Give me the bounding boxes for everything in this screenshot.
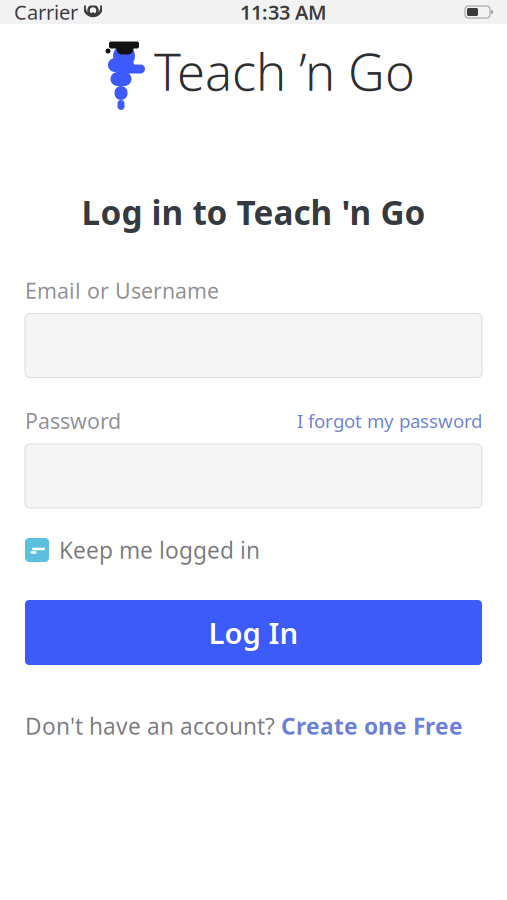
staticText: Teach ’n Go [154,37,415,105]
button[interactable]: I forgot my password [297,408,482,433]
staticText: Log in to Teach 'n Go [81,190,425,234]
staticText: Don't have an account? [25,711,281,741]
staticText: Carrier [14,0,78,25]
staticText: Create one Free [281,711,463,741]
button[interactable]: Keep me logged in [25,535,260,565]
staticText: I forgot my password [297,408,482,433]
button[interactable]: Create one Free [281,711,463,741]
staticText: Keep me logged in [59,535,260,565]
staticText: Email or Username [25,276,219,305]
staticText: Log In [208,613,298,652]
staticText: Password [25,407,121,435]
button[interactable]: Log In [25,600,482,665]
staticText: 11:33 AM [240,0,327,25]
